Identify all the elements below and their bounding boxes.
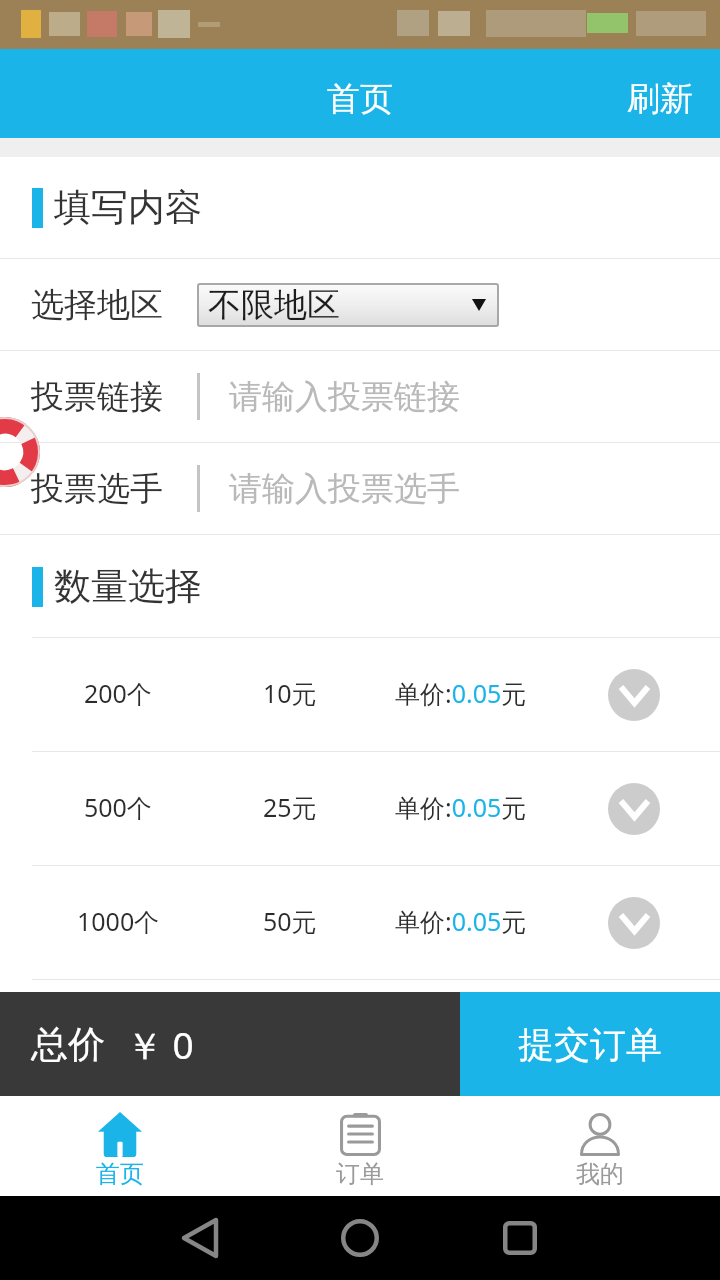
staticText: 数量选择 bbox=[54, 563, 202, 610]
button[interactable]: 我的 bbox=[480, 1096, 720, 1196]
staticText: 不限地区 bbox=[208, 284, 340, 326]
button[interactable]: 投票链接 bbox=[0, 351, 720, 442]
button[interactable]: Select quantity bbox=[608, 783, 660, 835]
button[interactable]: 500个 bbox=[0, 752, 720, 865]
staticText: 总价 bbox=[31, 1021, 105, 1068]
button[interactable]: Recent apps bbox=[480, 1198, 560, 1278]
button[interactable]: 总价 bbox=[0, 992, 460, 1096]
staticText: 提交订单 bbox=[518, 1022, 662, 1067]
staticText: 50元 bbox=[263, 904, 317, 938]
staticText: 投票选手 bbox=[31, 468, 163, 510]
button[interactable]: Help bbox=[0, 417, 40, 487]
staticText: 10元 bbox=[263, 676, 317, 710]
staticText: 25元 bbox=[263, 790, 317, 824]
button[interactable]: 不限地区 bbox=[197, 283, 499, 327]
button[interactable]: 提交订单 bbox=[460, 992, 720, 1096]
button[interactable]: 选择地区 bbox=[0, 259, 720, 350]
button[interactable]: 刷新 bbox=[600, 49, 720, 138]
staticText: 单价:0.05元 bbox=[395, 676, 527, 710]
staticText: 请输入投票链接 bbox=[229, 376, 460, 418]
staticText: 请输入投票选手 bbox=[229, 468, 460, 510]
staticText: 刷新 bbox=[627, 78, 693, 120]
button[interactable]: Home bbox=[320, 1198, 400, 1278]
button[interactable]: Select quantity bbox=[608, 897, 660, 949]
button[interactable]: Select quantity bbox=[608, 669, 660, 721]
staticText: 单价:0.05元 bbox=[395, 790, 527, 824]
staticText: 我的 bbox=[576, 1159, 624, 1189]
staticText: 500个 bbox=[84, 790, 152, 824]
staticText: 单价:0.05元 bbox=[395, 904, 527, 938]
staticText: 填写内容 bbox=[54, 184, 202, 231]
staticText: 选择地区 bbox=[31, 284, 163, 326]
button[interactable]: 投票选手 bbox=[0, 443, 720, 534]
button[interactable]: 200个 bbox=[0, 638, 720, 751]
staticText: 投票链接 bbox=[31, 376, 163, 418]
button[interactable]: 首页 bbox=[0, 1096, 240, 1196]
staticText: ￥ 0 bbox=[126, 1019, 194, 1070]
staticText: 首页 bbox=[96, 1159, 144, 1189]
staticText: 1000个 bbox=[77, 904, 160, 938]
button[interactable]: Back bbox=[160, 1198, 240, 1278]
staticText: 200个 bbox=[84, 676, 152, 710]
button[interactable]: 1000个 bbox=[0, 866, 720, 979]
staticText: 首页 bbox=[327, 78, 393, 120]
button[interactable]: 订单 bbox=[240, 1096, 480, 1196]
staticText: 订单 bbox=[336, 1159, 384, 1189]
